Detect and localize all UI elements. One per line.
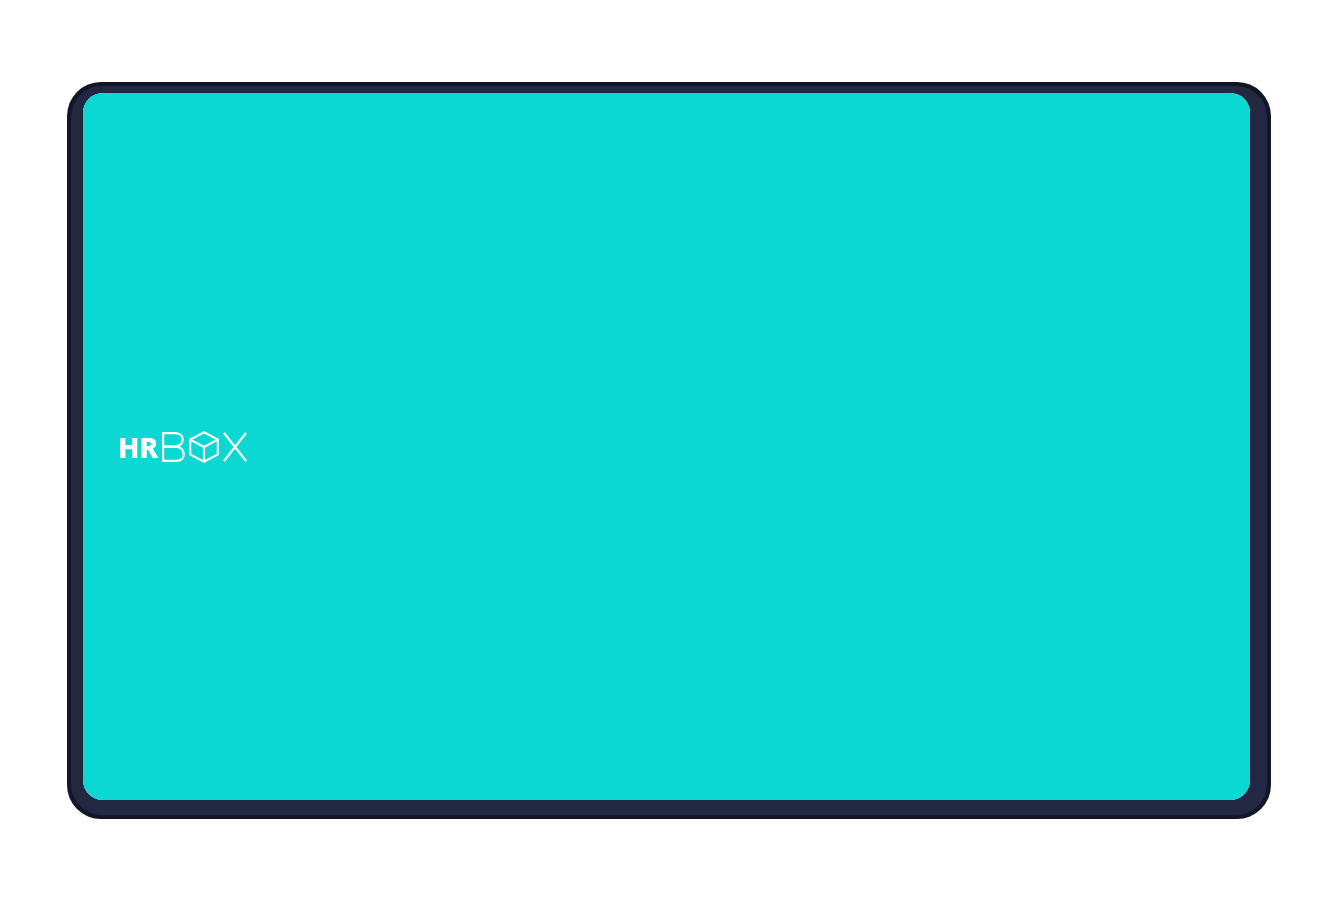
staticText: HR (118, 428, 159, 466)
button[interactable]: HRBOX home (118, 428, 247, 466)
